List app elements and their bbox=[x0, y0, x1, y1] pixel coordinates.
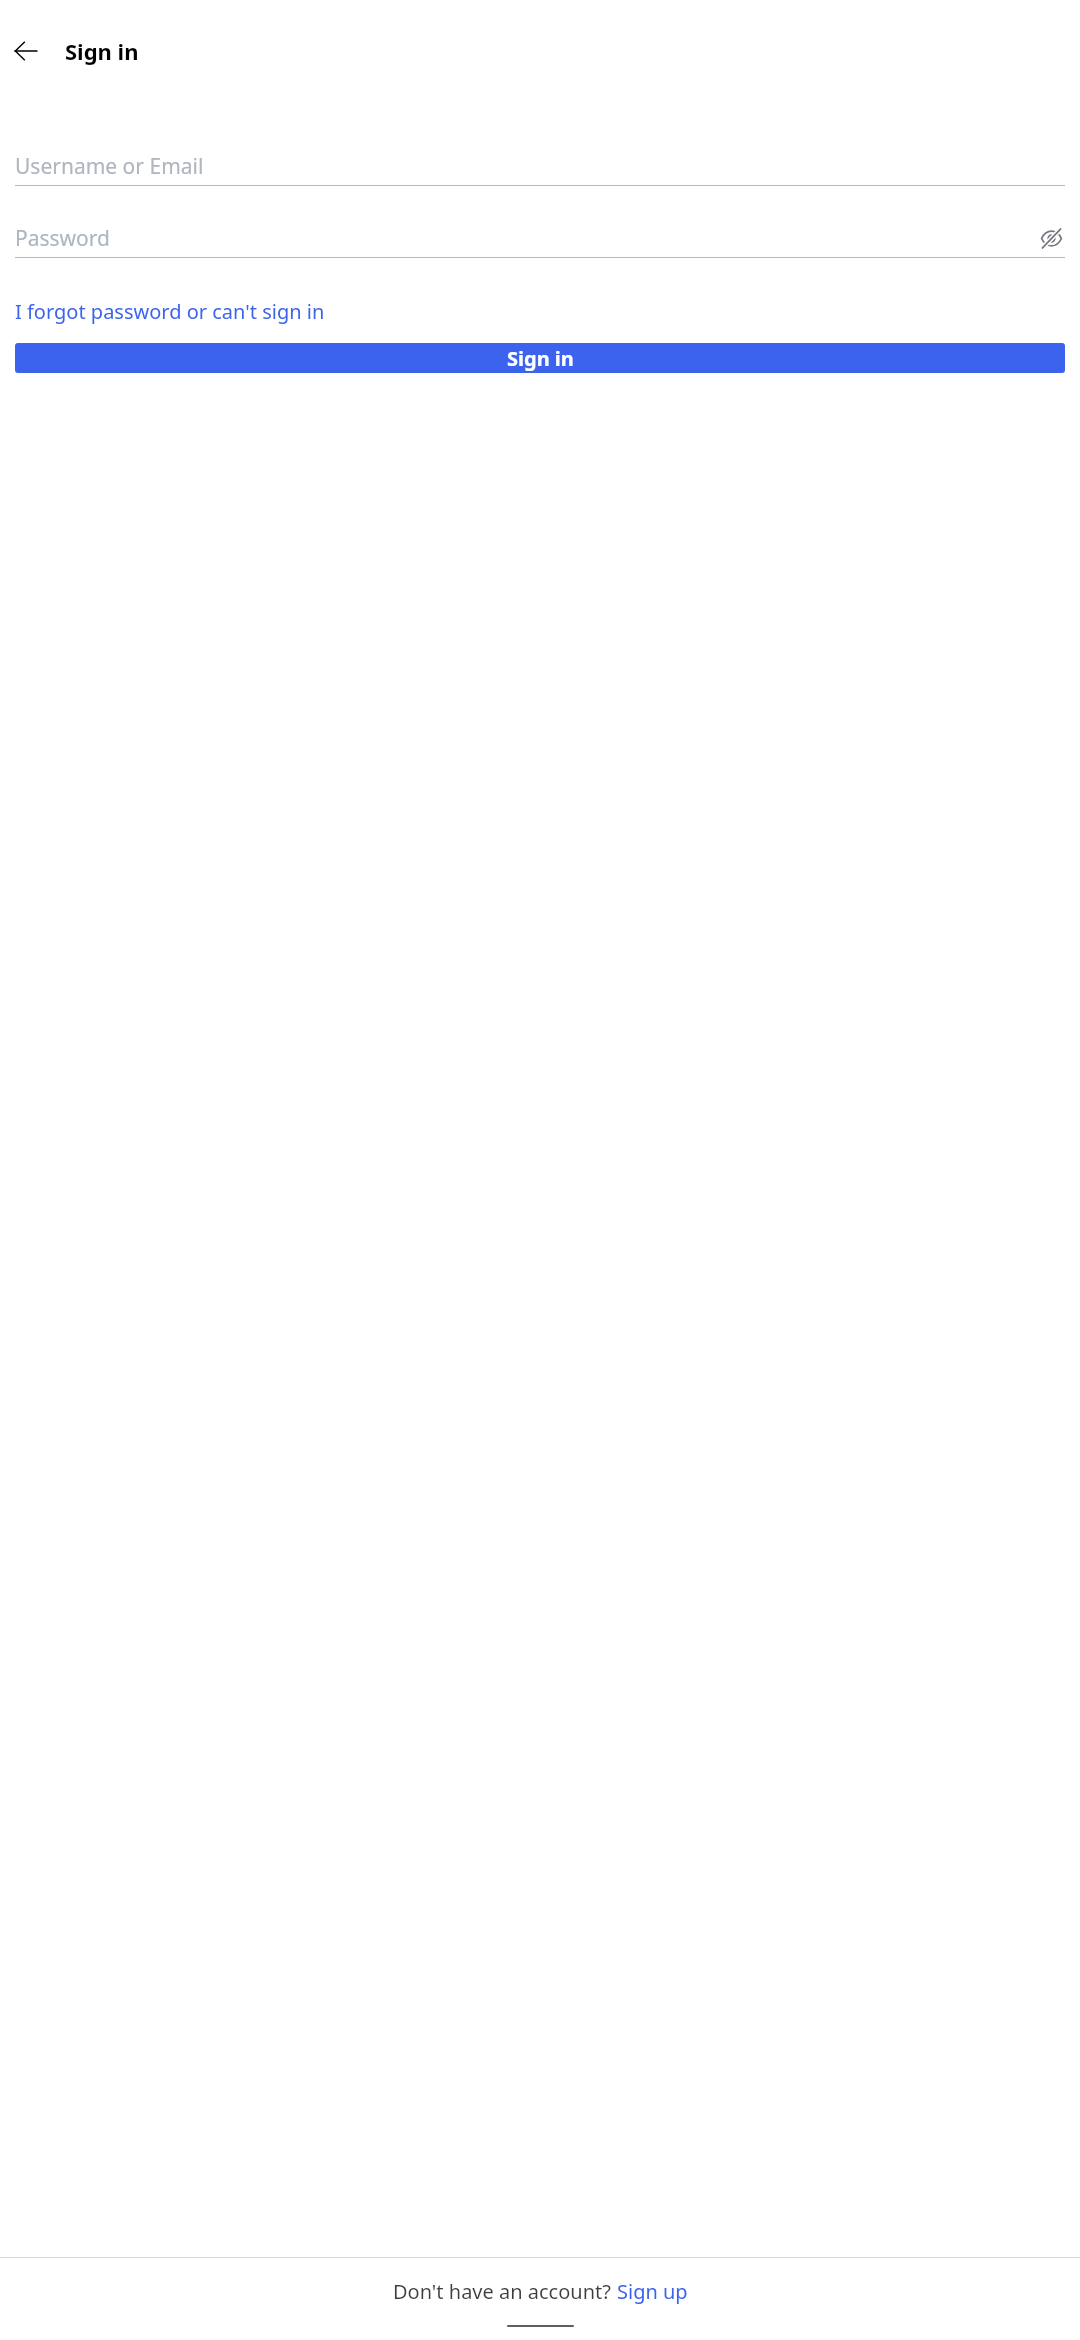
button[interactable]: Sign up bbox=[617, 2278, 688, 2305]
button[interactable]: Sign in bbox=[15, 343, 1065, 373]
staticText: Username or Email bbox=[15, 152, 204, 180]
button[interactable]: Back bbox=[9, 34, 43, 68]
button[interactable]: I forgot password or can't sign in bbox=[15, 298, 325, 325]
staticText: I forgot password or can't sign in bbox=[15, 298, 325, 325]
staticText: Sign in bbox=[507, 345, 574, 372]
staticText: Sign up bbox=[617, 2278, 688, 2305]
button[interactable]: Password bbox=[15, 224, 1065, 252]
staticText: Don't have an account? bbox=[393, 2278, 617, 2305]
staticText: Password bbox=[15, 224, 110, 252]
staticText: Sign in bbox=[65, 36, 139, 66]
button[interactable]: Username or Email bbox=[15, 152, 1065, 186]
button[interactable]: Show password bbox=[1037, 224, 1065, 252]
